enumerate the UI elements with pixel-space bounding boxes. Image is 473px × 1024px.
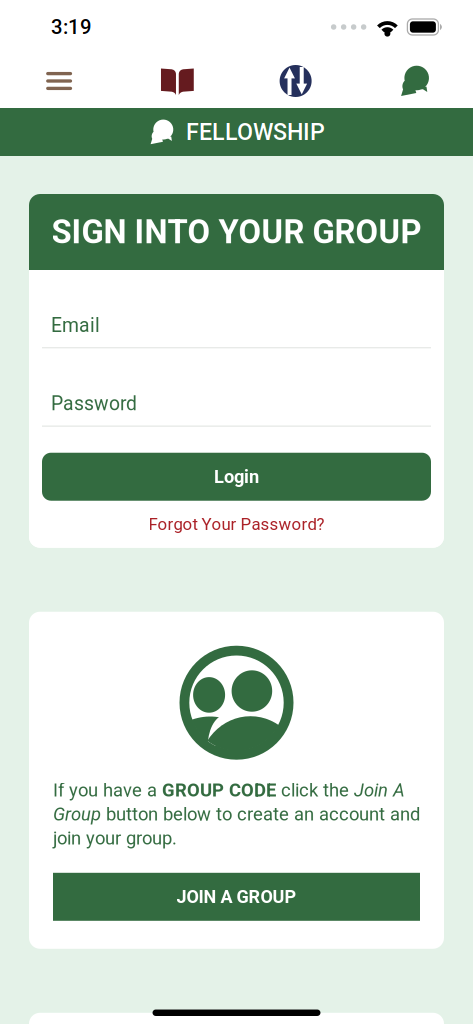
staticText: Email — [51, 314, 100, 337]
staticText: SIGN INTO YOUR GROUP — [51, 213, 421, 251]
button[interactable]: Fellowship — [355, 54, 473, 108]
button[interactable]: Bible — [118, 54, 236, 108]
button[interactable]: Give — [236, 54, 355, 108]
staticText: FELLOWSHIP — [186, 118, 325, 146]
staticText: Forgot Your Password? — [148, 514, 324, 534]
button[interactable]: JOIN A GROUP — [53, 873, 420, 921]
staticText: JOIN A GROUP — [176, 886, 296, 907]
button[interactable]: Forgot Your Password? — [42, 501, 431, 548]
staticText: 3:19 — [51, 15, 92, 39]
staticText: Password — [51, 392, 137, 415]
button[interactable]: Menu — [0, 54, 118, 108]
staticText: If you have a GROUP CODE click the Join … — [53, 780, 420, 849]
staticText: Login — [214, 466, 259, 487]
button[interactable]: Login — [42, 453, 431, 501]
